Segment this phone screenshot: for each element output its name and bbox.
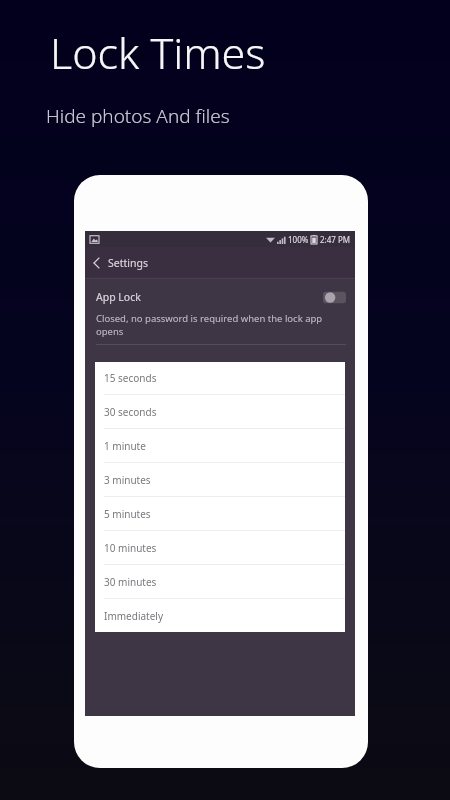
button[interactable]: 10 minutes <box>95 531 345 564</box>
staticText: 10 minutes <box>104 541 157 555</box>
staticText: 30 minutes <box>104 575 157 589</box>
button[interactable]: Back <box>85 252 107 274</box>
staticText: App Lock <box>96 290 141 304</box>
button[interactable]: Immediately <box>95 599 345 632</box>
button[interactable]: 5 minutes <box>95 497 345 530</box>
button[interactable]: 1 minute <box>95 429 345 462</box>
staticText: Immediately <box>104 609 163 623</box>
button[interactable]: App Lock toggle <box>323 291 346 304</box>
staticText: 2:47 PM <box>320 234 351 245</box>
staticText: 15 seconds <box>104 371 157 385</box>
staticText: 30 seconds <box>104 405 157 419</box>
staticText: Closed, no password is required when the… <box>96 312 346 338</box>
button[interactable]: 3 minutes <box>95 463 345 496</box>
button[interactable]: App Lock <box>85 279 355 345</box>
staticText: 5 minutes <box>104 507 151 521</box>
staticText: 1 minute <box>104 439 146 453</box>
button[interactable]: 15 seconds <box>95 362 345 394</box>
staticText: 100% <box>288 234 309 245</box>
staticText: Hide photos And files <box>46 103 230 129</box>
button[interactable]: 30 minutes <box>95 565 345 598</box>
staticText: Settings <box>108 256 148 270</box>
button[interactable]: 30 seconds <box>95 395 345 428</box>
staticText: 3 minutes <box>104 473 151 487</box>
staticText: Lock Times <box>50 23 266 82</box>
